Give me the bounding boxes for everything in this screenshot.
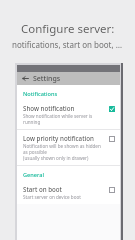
staticText: Settings — [33, 74, 61, 84]
staticText: General — [23, 171, 44, 179]
staticText: Show notification — [23, 104, 75, 112]
button[interactable]: Low priority notification — [17, 130, 120, 165]
staticText: Configure server: — [21, 21, 115, 37]
staticText: Start on boot — [23, 185, 62, 193]
staticText: Start server on device boot — [23, 194, 81, 200]
button[interactable]: Start on boot — [17, 181, 120, 204]
staticText: Notification will be shown as hidden as … — [23, 143, 104, 161]
staticText: notifications, start on boot, … — [12, 39, 123, 50]
staticText: Low priority notification — [23, 134, 94, 142]
staticText: Notifications — [23, 90, 58, 98]
staticText: Show notification while server is runnin… — [23, 113, 104, 125]
button[interactable]: Show notification — [17, 100, 120, 129]
button[interactable]: Back — [21, 74, 30, 83]
